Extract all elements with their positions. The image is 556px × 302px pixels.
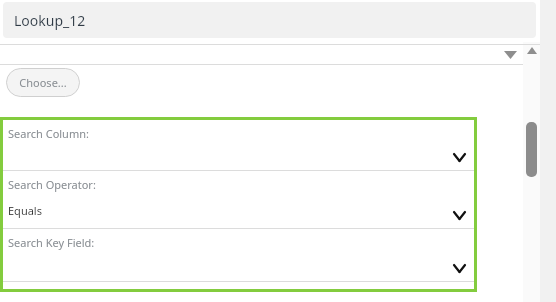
- button[interactable]: Expand section: [0, 45, 523, 64]
- button[interactable]: Scroll up: [523, 42, 540, 59]
- button[interactable]: Search Key Field:: [3, 229, 474, 281]
- staticText: Search Column:: [8, 126, 89, 141]
- staticText: Search Key Field:: [8, 235, 95, 250]
- staticText: Choose...: [19, 75, 67, 90]
- staticText: Search Operator:: [8, 177, 96, 192]
- staticText: Equals: [8, 203, 42, 218]
- button[interactable]: Lookup_12: [3, 2, 536, 38]
- staticText: Lookup_12: [14, 11, 86, 30]
- button[interactable]: Search Operator:: [3, 171, 474, 228]
- button[interactable]: Search Column:: [3, 120, 474, 170]
- button[interactable]: Choose...: [6, 68, 80, 97]
- button[interactable]: Scrollbar: [526, 122, 537, 177]
